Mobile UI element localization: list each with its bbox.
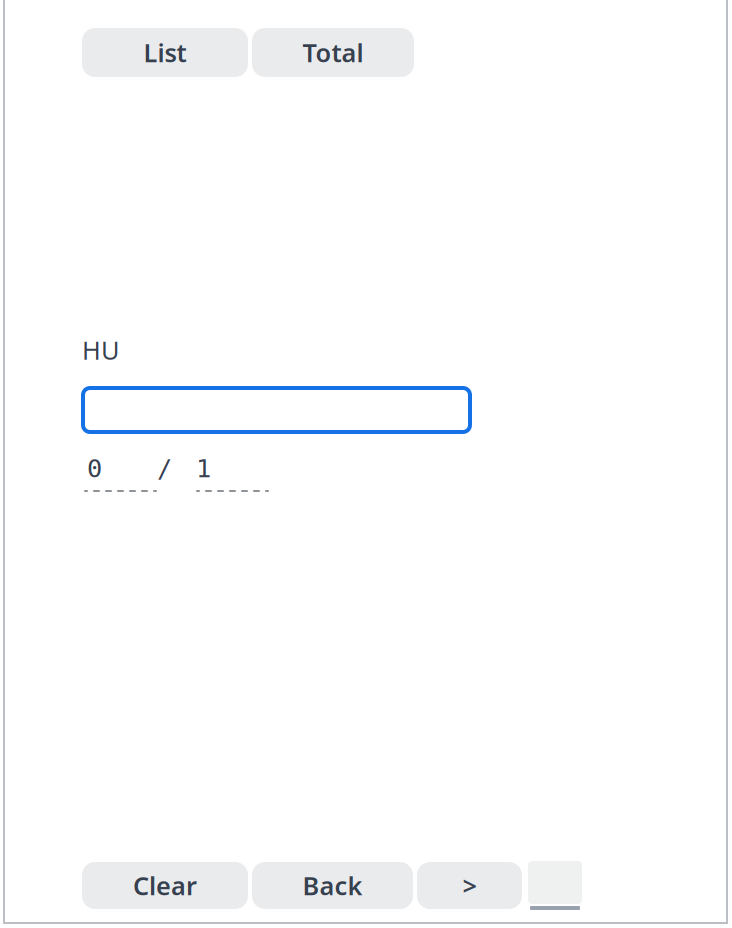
staticText: 1: [196, 454, 211, 483]
button[interactable]: Hide keyboard: [528, 861, 582, 910]
staticText: 0: [87, 454, 102, 483]
staticText: >: [462, 869, 476, 902]
staticText: Clear: [133, 869, 197, 902]
staticText: List: [143, 36, 186, 69]
staticText: Total: [302, 36, 363, 69]
staticText: HU: [82, 333, 120, 367]
button[interactable]: HU text field: [83, 388, 470, 432]
button[interactable]: Clear: [82, 862, 248, 909]
button[interactable]: Back: [252, 862, 413, 909]
staticText: /: [157, 454, 172, 483]
button[interactable]: Total: [252, 28, 414, 77]
staticText: Back: [302, 869, 362, 902]
button[interactable]: List: [82, 28, 248, 77]
button[interactable]: Next: [417, 862, 522, 909]
